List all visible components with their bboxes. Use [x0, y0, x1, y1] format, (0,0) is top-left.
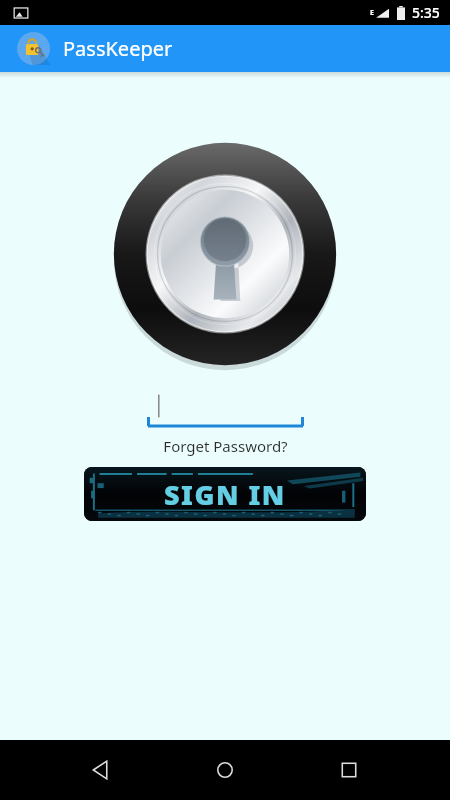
staticText: E — [370, 8, 374, 18]
button[interactable]: Recents — [326, 747, 372, 793]
button[interactable]: Forget Password? — [163, 436, 288, 456]
staticText: PassKeeper — [63, 35, 173, 62]
staticText: SIGN IN — [164, 476, 286, 513]
staticText: 5:35 — [412, 3, 440, 22]
button[interactable]: Home — [202, 747, 248, 793]
button[interactable] — [147, 390, 304, 428]
button[interactable]: Back — [78, 747, 124, 793]
button[interactable]: SIGN IN — [84, 467, 366, 521]
